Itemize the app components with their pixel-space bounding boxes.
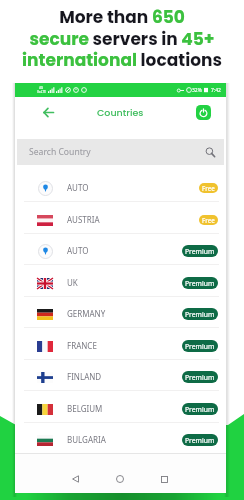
staticText: Premium [185,405,215,414]
staticText: Free [202,216,215,224]
button[interactable]: AUTO [15,233,226,264]
staticText: Premium [185,247,215,256]
button[interactable]: Premium [182,277,218,289]
button[interactable]: Home [110,469,130,489]
button[interactable]: UK [15,265,226,296]
staticText: Premium [185,373,215,382]
button[interactable]: FINLAND [15,359,226,390]
button[interactable]: Premium [182,403,218,415]
staticText: Premium [185,279,215,288]
button[interactable]: Premium [182,340,218,352]
button[interactable]: Back [65,469,85,489]
button[interactable]: BELGIUM [15,391,226,422]
staticText: FINLAND [67,371,102,382]
staticText: 4G [39,86,44,90]
staticText: BULGARIA [67,434,106,445]
button[interactable]: Premium [182,434,218,446]
button[interactable]: BULGARIA [15,422,226,453]
staticText: 7:42 [211,87,221,94]
staticText: Search Country [29,146,91,158]
staticText: Countries [97,106,144,119]
staticText: Free [202,184,215,192]
staticText: BELGIUM [67,403,103,414]
button[interactable]: Premium [182,245,218,257]
staticText: GERMANY [67,308,106,319]
staticText: FRANCE [67,340,97,351]
staticText: AUSTRIA [67,214,100,225]
button[interactable]: Free [199,215,218,225]
staticText: UK [67,277,78,288]
button[interactable]: Recents [154,469,174,489]
button[interactable]: GERMANY [15,296,226,327]
staticText: More than 650 secure servers in 45+ inte… [22,5,222,71]
button[interactable]: AUTO [15,170,226,201]
staticText: Premium [185,342,215,351]
staticText: 32% [192,87,202,94]
staticText: VoLTE [37,90,46,94]
other: Search [205,147,216,158]
button[interactable]: Search Country [17,139,224,165]
button[interactable]: AUSTRIA [15,202,226,233]
staticText: Premium [185,436,215,445]
button[interactable]: Free [199,183,218,193]
button[interactable]: FRANCE [15,328,226,359]
button[interactable]: Premium [182,308,218,320]
staticText: AUTO [67,182,89,193]
button[interactable]: Premium [182,371,218,383]
button[interactable]: Power [196,105,211,120]
staticText: Premium [185,310,215,319]
staticText: AUTO [67,245,89,256]
button[interactable]: Back [38,102,58,122]
